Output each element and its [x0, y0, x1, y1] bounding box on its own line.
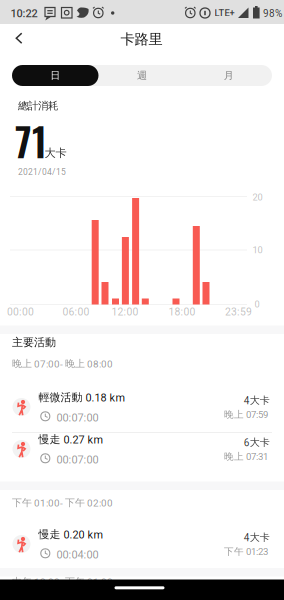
button[interactable]: 輕微活動 0.18 km [0, 385, 284, 427]
staticText: 晚上 07:59 [224, 408, 268, 421]
staticText: 大卡 [44, 146, 66, 160]
staticText: 慢走 0.27 km [39, 432, 104, 446]
staticText: 中午 12:00- 下午 01:00 [12, 575, 113, 588]
button[interactable]: 日 [12, 65, 98, 86]
staticText: 10 [252, 244, 262, 255]
staticText: LTE+ [214, 7, 234, 18]
staticText: 6大卡 [244, 436, 270, 449]
staticText: 下午 01:00- 下午 02:00 [12, 496, 113, 509]
staticText: 20 [252, 192, 262, 203]
staticText: 12:00 [111, 306, 138, 318]
staticText: 2021/04/15 [18, 167, 66, 177]
staticText: 月 [224, 69, 234, 82]
staticText: 00:07:00 [56, 453, 98, 466]
staticText: 慢走 0.20 km [39, 527, 104, 541]
staticText: 主要活動 [12, 335, 56, 349]
staticText: 晚上 07:00- 晚上 08:00 [12, 357, 113, 370]
staticText: 06:00 [62, 306, 89, 318]
staticText: 4大卡 [244, 531, 270, 544]
staticText: 00:07:00 [56, 411, 98, 424]
staticText: 98% [263, 8, 282, 19]
staticText: 10:22 [10, 7, 37, 20]
staticText: 23:59 [225, 306, 252, 318]
staticText: 4大卡 [244, 394, 270, 407]
staticText: 日 [50, 69, 60, 82]
staticText: 0 [254, 299, 259, 310]
staticText: 00:04:00 [56, 548, 98, 561]
staticText: 71 [15, 112, 47, 169]
button[interactable]: 慢走 0.20 km [0, 522, 284, 564]
staticText: 總計消耗 [18, 99, 58, 112]
button[interactable]: 週 [99, 65, 185, 86]
button[interactable]: 月 [185, 65, 272, 86]
button[interactable]: Back [0, 24, 38, 53]
staticText: 輕微活動 0.18 km [39, 390, 126, 404]
staticText: 00:00 [7, 306, 34, 318]
staticText: 18:00 [168, 306, 195, 318]
staticText: 下午 01:23 [224, 545, 268, 558]
button[interactable]: 慢走 0.27 km [0, 427, 284, 469]
staticText: 週 [137, 69, 147, 82]
staticText: 卡路里 [120, 30, 162, 48]
staticText: 晚上 07:31 [224, 450, 268, 463]
